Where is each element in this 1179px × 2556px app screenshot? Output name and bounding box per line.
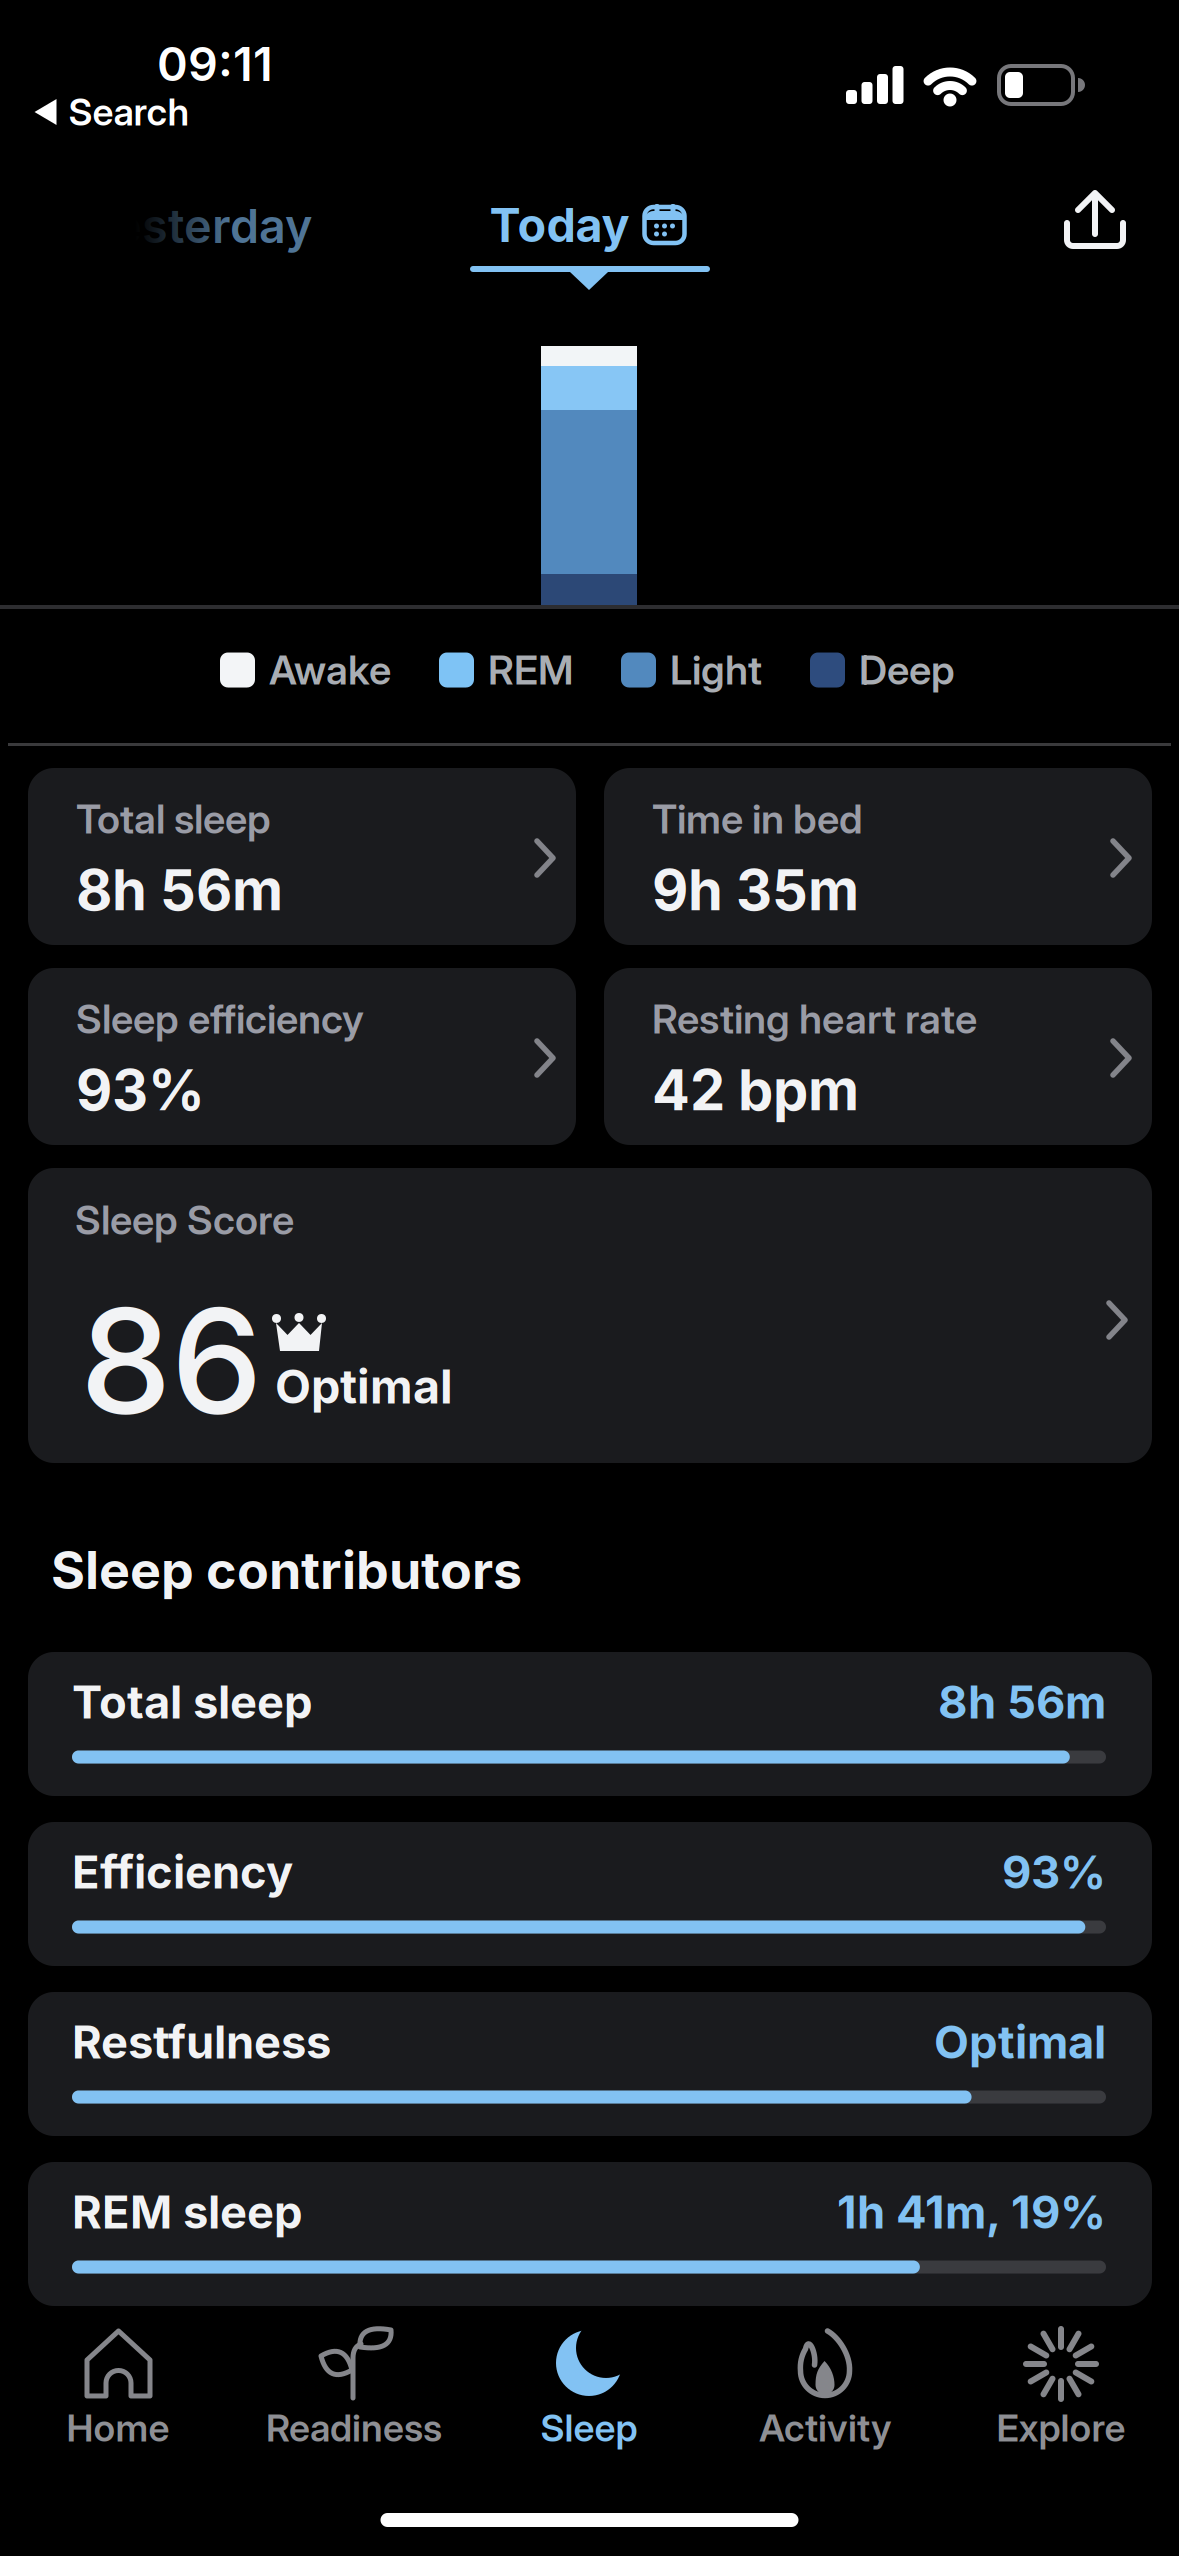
staticText: Total sleep <box>76 795 271 843</box>
staticText: Sleep contributors <box>51 1539 522 1601</box>
staticText: Today <box>489 197 629 253</box>
button[interactable]: Yesterday <box>12 198 312 254</box>
button[interactable]: Time in bed <box>604 768 1152 945</box>
staticText: Total sleep <box>72 1675 313 1729</box>
staticText: Efficiency <box>72 1845 293 1899</box>
button[interactable]: Sleep <box>472 2327 706 2451</box>
button[interactable]: Home <box>1 2327 235 2451</box>
staticText: Optimal <box>934 2015 1106 2069</box>
button[interactable]: Sleep efficiency <box>28 968 576 1145</box>
staticText: 93% <box>1002 1845 1106 1899</box>
staticText: 8h 56m <box>938 1675 1106 1729</box>
staticText: Deep <box>859 646 955 694</box>
button[interactable]: Sleep Score <box>28 1168 1152 1463</box>
staticText: Sleep <box>540 2406 637 2450</box>
staticText: Optimal <box>275 1359 453 1414</box>
staticText: 09:11 <box>157 36 273 92</box>
staticText: 9h 35m <box>652 857 859 923</box>
button[interactable]: Back to Search <box>34 90 189 134</box>
button[interactable]: Activity <box>708 2327 942 2451</box>
staticText: 1h 41m, 19% <box>837 2185 1106 2239</box>
button[interactable]: Resting heart rate <box>604 968 1152 1145</box>
button[interactable]: REM sleep <box>28 2162 1152 2306</box>
staticText: REM <box>488 646 573 694</box>
staticText: Resting heart rate <box>652 995 977 1043</box>
staticText: Yesterday <box>85 198 312 254</box>
staticText: 42 bpm <box>652 1057 859 1123</box>
staticText: Activity <box>759 2406 892 2450</box>
staticText: Readiness <box>266 2406 442 2450</box>
button[interactable]: Readiness <box>237 2327 471 2451</box>
staticText: Time in bed <box>652 795 863 843</box>
staticText: Sleep efficiency <box>76 995 364 1043</box>
staticText: Explore <box>996 2406 1125 2450</box>
button[interactable]: Total sleep <box>28 768 576 945</box>
staticText: Light <box>670 646 762 694</box>
button[interactable]: Efficiency <box>28 1822 1152 1966</box>
staticText: 86 <box>80 1275 263 1447</box>
button[interactable]: Share <box>1063 188 1127 258</box>
staticText: 8h 56m <box>76 857 283 923</box>
staticText: Sleep Score <box>75 1196 294 1244</box>
staticText: REM sleep <box>72 2185 303 2239</box>
button[interactable]: Restfulness <box>28 1992 1152 2136</box>
staticText: Restfulness <box>72 2015 331 2069</box>
staticText: Search <box>68 90 189 134</box>
button[interactable]: Explore <box>944 2327 1178 2451</box>
button[interactable]: Today <box>489 197 684 253</box>
staticText: Awake <box>269 646 391 694</box>
staticText: Home <box>66 2406 169 2450</box>
button[interactable]: Total sleep <box>28 1652 1152 1796</box>
staticText: 93% <box>76 1057 205 1123</box>
